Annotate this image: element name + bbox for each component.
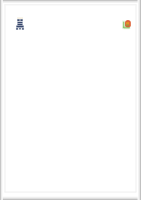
button[interactable]: App logo bbox=[16, 17, 24, 31]
button[interactable]: Brand logo bbox=[122, 19, 131, 30]
